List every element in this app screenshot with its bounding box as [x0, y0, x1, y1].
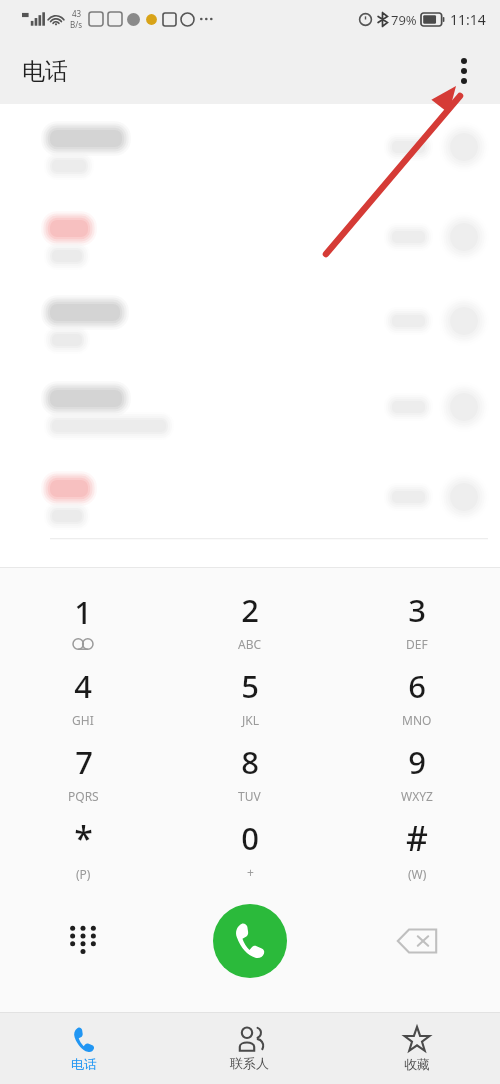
staticText: 5: [241, 665, 259, 707]
staticText: 3: [408, 589, 426, 631]
staticText: JKL: [242, 712, 259, 728]
button[interactable]: 0: [166, 810, 333, 886]
staticText: 收藏: [404, 1056, 430, 1072]
staticText: GHI: [72, 712, 94, 728]
button[interactable]: 收藏: [333, 1013, 500, 1084]
staticText: 43: [72, 8, 82, 19]
staticText: 电话: [71, 1056, 97, 1072]
button[interactable]: 4: [0, 658, 166, 734]
staticText: 11:14: [450, 10, 486, 29]
staticText: 9: [408, 741, 426, 783]
button[interactable]: 9: [333, 734, 500, 810]
staticText: 0: [241, 817, 259, 859]
staticText: +: [247, 864, 254, 880]
staticText: 2: [241, 589, 259, 631]
staticText: (W): [408, 866, 427, 882]
button[interactable]: 联系人: [166, 1013, 333, 1084]
staticText: 8: [241, 741, 259, 783]
staticText: WXYZ: [401, 788, 433, 804]
button[interactable]: 电话: [0, 1013, 166, 1084]
button[interactable]: Call: [213, 904, 287, 978]
button[interactable]: 7: [0, 734, 166, 810]
staticText: DEF: [406, 636, 428, 652]
button[interactable]: 6: [333, 658, 500, 734]
button[interactable]: 2: [166, 582, 333, 658]
staticText: #: [406, 815, 428, 861]
staticText: PQRS: [68, 788, 99, 804]
staticText: ABC: [238, 636, 262, 652]
staticText: 6: [408, 665, 426, 707]
staticText: 1: [74, 591, 92, 633]
button[interactable]: *: [0, 810, 166, 886]
button[interactable]: #: [333, 810, 500, 886]
staticText: B/s: [70, 19, 83, 30]
staticText: 79%: [391, 11, 417, 29]
button[interactable]: Hide dialpad: [0, 886, 166, 1012]
button[interactable]: More options: [442, 49, 486, 93]
button[interactable]: 8: [166, 734, 333, 810]
staticText: 联系人: [230, 1055, 269, 1071]
staticText: *: [74, 815, 93, 861]
staticText: (P): [76, 866, 91, 882]
button[interactable]: 1: [0, 582, 166, 658]
button[interactable]: 3: [333, 582, 500, 658]
staticText: 电话: [22, 57, 68, 86]
staticText: 7: [75, 741, 93, 783]
button[interactable]: Delete: [333, 886, 500, 1012]
staticText: 4: [74, 665, 92, 707]
staticText: MNO: [402, 712, 432, 728]
staticText: TUV: [238, 788, 261, 804]
button[interactable]: 5: [166, 658, 333, 734]
